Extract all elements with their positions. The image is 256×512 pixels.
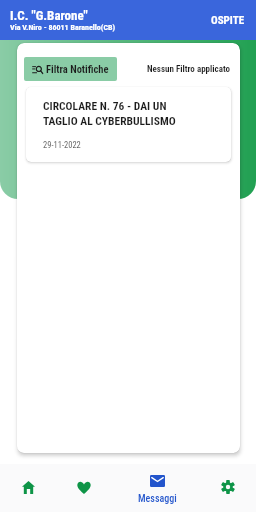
button[interactable]: OSPITE [200, 6, 256, 35]
staticText: 29-11-2022 [43, 140, 81, 150]
staticText: I.C. "G.Barone" [10, 8, 88, 23]
staticText: CIRCOLARE N. 76 - DAI UN TAGLIO AL CYBER… [43, 99, 176, 128]
button[interactable]: Messaggi [125, 464, 189, 512]
staticText: OSPITE [211, 14, 245, 27]
staticText: Messaggi [138, 493, 177, 505]
button[interactable]: Favourites [62, 464, 106, 512]
button[interactable]: Home [6, 464, 50, 512]
button[interactable]: CIRCOLARE N. 76 - DAI UN TAGLIO AL CYBER… [26, 87, 231, 162]
staticText: Filtra Notifiche [46, 63, 109, 75]
button[interactable]: Settings [206, 464, 250, 512]
staticText: Nessun Filtro applicato [147, 64, 231, 75]
button[interactable]: Filtra Notifiche [24, 57, 117, 81]
staticText: Via V.Niro - 86011 Baranello(CB) [10, 23, 116, 32]
